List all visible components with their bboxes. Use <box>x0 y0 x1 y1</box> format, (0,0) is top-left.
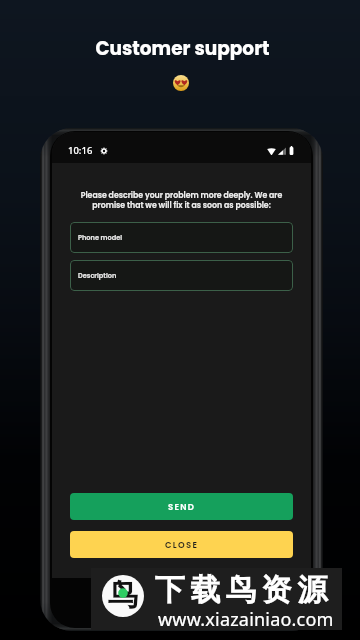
button[interactable]: CLOSE <box>70 531 293 558</box>
button[interactable]: Description <box>70 260 293 291</box>
staticText: SEND <box>168 501 196 513</box>
staticText: Customer support <box>95 36 270 62</box>
staticText: Phone model <box>78 233 123 242</box>
staticText: Description <box>78 271 117 280</box>
button[interactable]: SEND <box>70 493 293 520</box>
staticText: www.xiazainiao.com <box>158 607 334 632</box>
button[interactable]: Phone model <box>70 222 293 253</box>
staticText: Please describe your problem more deeply… <box>70 190 293 211</box>
other: Settings <box>100 147 108 155</box>
staticText: 下载鸟资源 <box>152 571 330 609</box>
staticText: 鸟 <box>108 576 138 614</box>
staticText: 10:16 <box>68 144 93 157</box>
staticText: CLOSE <box>165 539 199 551</box>
